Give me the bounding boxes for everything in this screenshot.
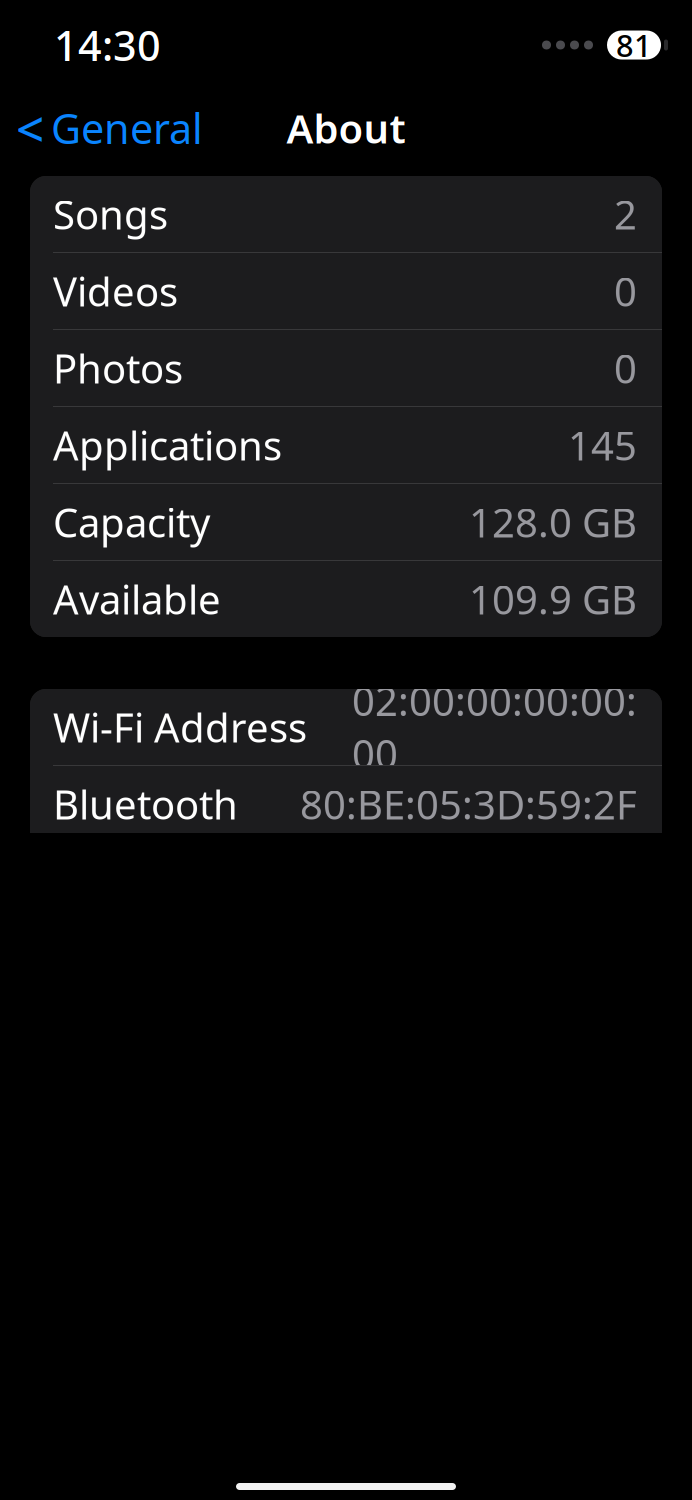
button[interactable]: Photos: [30, 330, 662, 406]
staticText: 0: [614, 341, 637, 394]
staticText: 109.9 GB: [469, 572, 637, 625]
staticText: Songs: [53, 187, 168, 240]
staticText: 2: [614, 187, 637, 240]
staticText: 80:BE:05:3D:59:2F: [300, 777, 637, 830]
staticText: About: [286, 101, 405, 154]
staticText: Available: [53, 572, 221, 625]
staticText: Videos: [53, 264, 178, 317]
staticText: 02:00:00:00:00:00: [352, 674, 637, 780]
staticText: 0: [614, 264, 637, 317]
staticText: 86954603834678: [315, 1485, 637, 1500]
staticText: Capacity: [53, 495, 210, 548]
button[interactable]: MEID: [30, 1473, 662, 1500]
staticText: Photos: [53, 341, 183, 394]
staticText: Bluetooth: [53, 777, 238, 830]
staticText: <: [16, 95, 44, 161]
button[interactable]: Capacity: [30, 484, 662, 560]
staticText: 89860090191407095755: [200, 1381, 637, 1488]
staticText: Applications: [53, 418, 282, 471]
button[interactable]: Videos: [30, 253, 662, 329]
staticText: 81: [616, 25, 652, 65]
staticText: 145: [568, 418, 637, 471]
staticText: 128.0 GB: [469, 495, 637, 548]
staticText: General: [51, 101, 203, 155]
button[interactable]: Songs: [30, 176, 662, 252]
button[interactable]: Bluetooth: [30, 766, 662, 842]
button[interactable]: <: [0, 87, 203, 169]
staticText: 14:30: [54, 18, 161, 72]
button[interactable]: Wi-Fi Address: [30, 689, 662, 765]
button[interactable]: Available: [30, 561, 662, 637]
button[interactable]: Applications: [30, 407, 662, 483]
staticText: Wi-Fi Address: [53, 700, 307, 753]
